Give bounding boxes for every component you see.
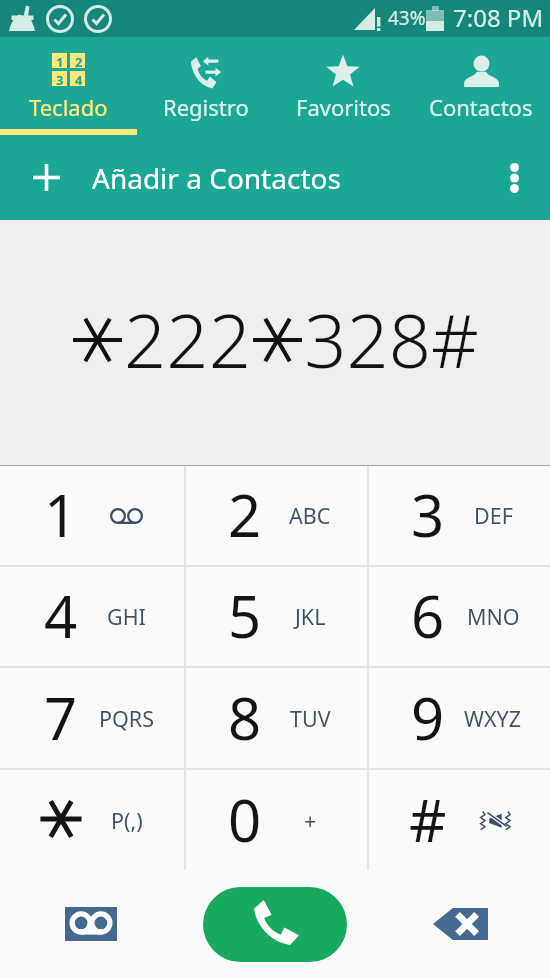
button[interactable]: 3 — [367, 466, 550, 565]
staticText: 1 — [56, 53, 64, 68]
button[interactable]: Voicemail — [0, 870, 172, 978]
button[interactable]: More options — [480, 135, 550, 220]
button[interactable]: P(,) — [0, 770, 184, 870]
staticText: DEF — [474, 501, 513, 530]
button[interactable]: 5 — [184, 567, 367, 666]
staticText: MNO — [467, 602, 520, 631]
button[interactable]: Añadir a Contactos — [0, 135, 484, 220]
staticText: Registro — [163, 92, 249, 122]
staticText: 7 — [44, 678, 78, 757]
staticText: + — [304, 806, 317, 835]
staticText: 0 — [228, 780, 262, 859]
staticText: Añadir a Contactos — [92, 159, 341, 197]
staticText: 9 — [411, 678, 445, 757]
button[interactable]: 2 — [184, 466, 367, 565]
staticText: 2 — [228, 475, 262, 554]
staticText: PQRS — [99, 704, 154, 733]
button[interactable]: Contactos — [412, 37, 550, 135]
button[interactable]: 4 — [0, 567, 184, 666]
button[interactable]: 1 — [0, 466, 184, 565]
button[interactable]: Registro — [137, 37, 274, 135]
staticText: Contactos — [429, 92, 533, 122]
staticText: Teclado — [29, 92, 108, 122]
button[interactable]: Favoritos — [274, 37, 412, 135]
staticText: 222 — [124, 289, 251, 390]
button[interactable]: 8 — [184, 668, 367, 768]
staticText: GHI — [107, 602, 146, 631]
button[interactable]: 0 — [184, 770, 367, 870]
button[interactable]: 7 — [0, 668, 184, 768]
button[interactable]: # — [367, 770, 550, 870]
staticText: TUV — [290, 704, 331, 733]
staticText: 8 — [228, 678, 262, 757]
button[interactable]: Delete — [378, 870, 550, 978]
staticText: 7:08 PM — [453, 1, 544, 34]
button[interactable]: 1 — [0, 37, 137, 135]
staticText: 5 — [228, 576, 262, 655]
staticText: 3 — [411, 475, 445, 554]
button[interactable]: 9 — [367, 668, 550, 768]
staticText: 1 — [44, 475, 78, 554]
staticText: 4 — [44, 576, 78, 655]
staticText: JKL — [295, 602, 326, 631]
staticText: 43% — [388, 5, 426, 31]
staticText: 2 — [75, 53, 83, 68]
staticText: # — [409, 780, 447, 859]
staticText: P(,) — [111, 806, 143, 835]
button[interactable]: 6 — [367, 567, 550, 666]
staticText: 6 — [411, 576, 445, 655]
button[interactable]: Call — [172, 870, 378, 978]
staticText: 328# — [304, 289, 479, 390]
staticText: ABC — [289, 501, 331, 530]
staticText: 3 — [56, 71, 64, 86]
staticText: Favoritos — [296, 92, 391, 122]
staticText: 4 — [75, 71, 83, 86]
staticText: WXYZ — [464, 704, 522, 733]
